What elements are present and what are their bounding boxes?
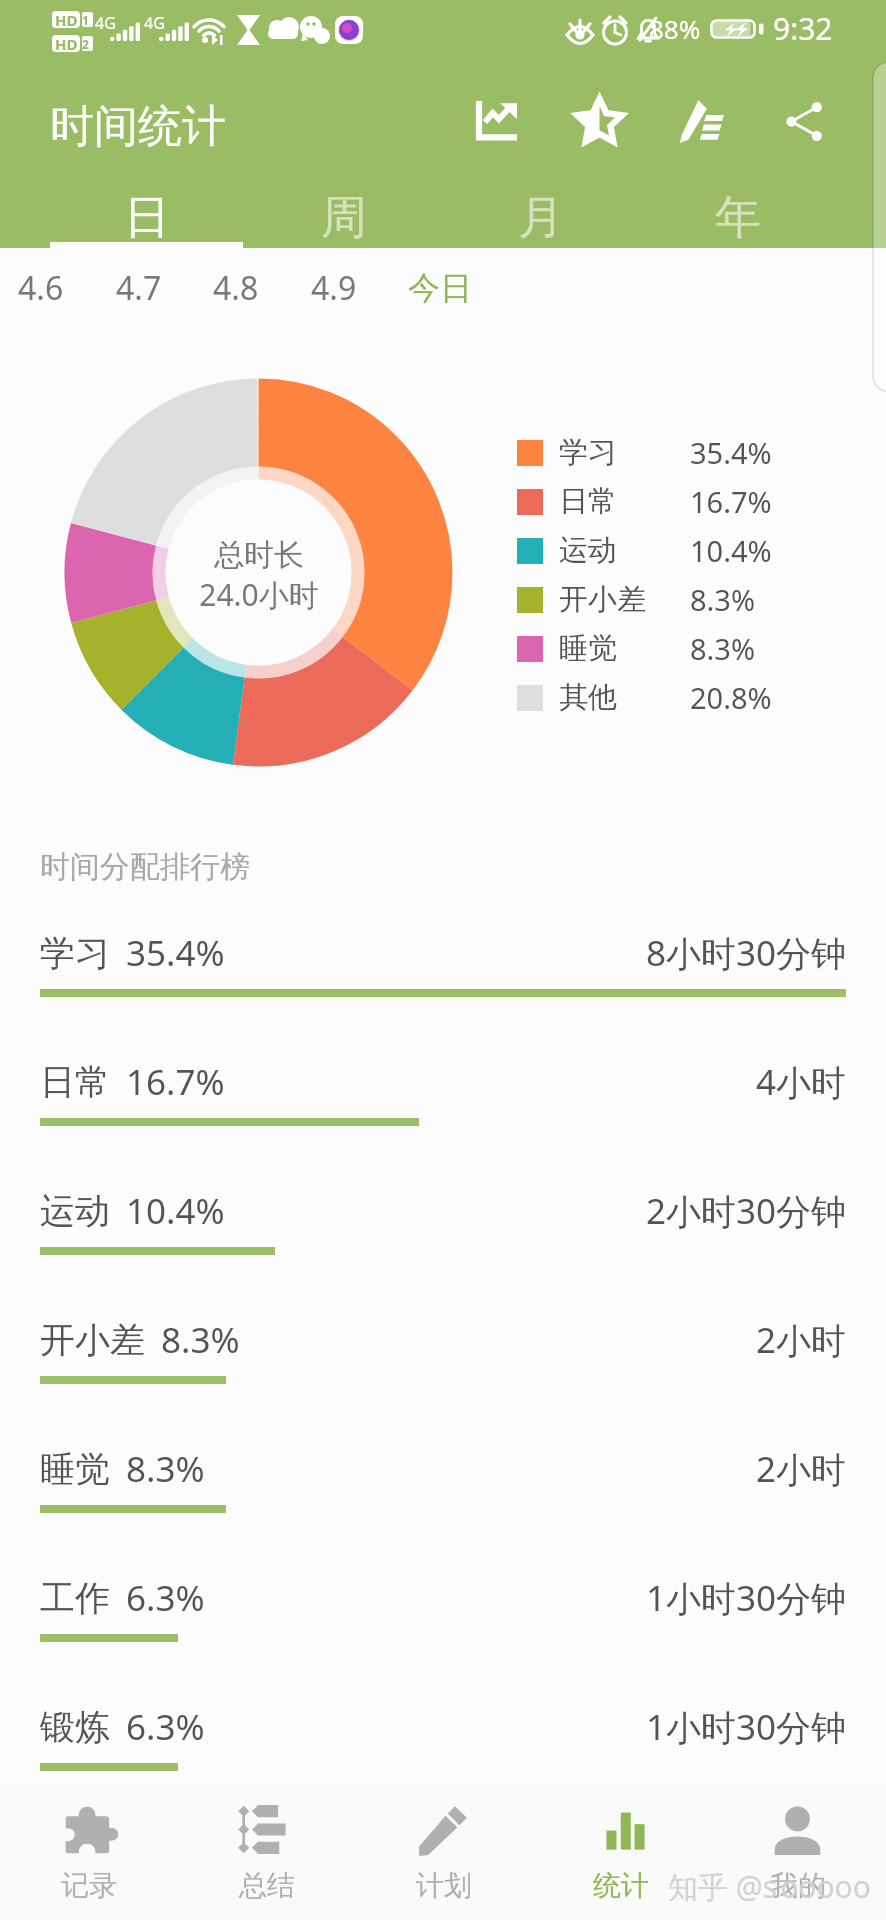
staticText: 8.3% (161, 1316, 240, 1364)
staticText: 统计 (593, 1868, 649, 1903)
staticText: 6.3% (126, 1703, 205, 1751)
staticText: HD (55, 34, 78, 54)
staticText: 4.7 (116, 266, 162, 310)
staticText: 4G (95, 12, 116, 34)
staticText: 其他 (559, 679, 690, 716)
button[interactable]: 4.6 (10, 248, 90, 324)
button[interactable]: 4.7 (108, 248, 188, 324)
staticText: 计划 (416, 1868, 472, 1903)
staticText: 日常 (40, 1060, 110, 1104)
staticText: 4.6 (18, 266, 64, 310)
button[interactable]: 周 (245, 160, 442, 248)
staticText: 睡觉 (559, 630, 690, 667)
button[interactable]: 开小差 (0, 1305, 886, 1434)
staticText: 日常 (559, 483, 690, 520)
button[interactable]: 今日 (400, 248, 480, 324)
button[interactable]: 日常 (0, 1047, 886, 1176)
staticText: 4.9 (311, 266, 357, 310)
staticText: HD (55, 10, 78, 30)
staticText: 1小时30分钟 (646, 1703, 847, 1751)
staticText: 4G (144, 12, 165, 34)
staticText: 我的 (770, 1868, 826, 1903)
button[interactable]: 计划 (355, 1779, 532, 1920)
button[interactable]: 年 (639, 160, 836, 248)
button[interactable]: 睡觉 (0, 1434, 886, 1563)
staticText: 年 (715, 189, 761, 247)
staticText: 6.3% (126, 1574, 205, 1622)
staticText: 4.8 (213, 266, 259, 310)
staticText: 8小时30分钟 (646, 929, 847, 977)
staticText: 1 (82, 12, 89, 28)
button[interactable]: Chart (456, 80, 536, 160)
staticText: 2小时 (756, 1316, 847, 1364)
staticText: 4小时 (756, 1058, 847, 1106)
staticText: 时间统计 (50, 99, 226, 154)
staticText: 知乎 @s ooooo (668, 1866, 871, 1907)
staticText: 16.7% (690, 482, 772, 521)
staticText: 锻炼 (40, 1705, 110, 1749)
staticText: 9:32 (773, 8, 833, 49)
staticText: 8.3% (690, 629, 756, 668)
button[interactable]: 4.9 (303, 248, 383, 324)
button[interactable]: 记录 (0, 1779, 178, 1920)
staticText: 2 (82, 36, 89, 52)
button[interactable]: 锻炼 (0, 1692, 886, 1821)
staticText: 运动 (40, 1189, 110, 1233)
staticText: 1小时30分钟 (646, 1574, 847, 1622)
button[interactable]: 运动 (0, 1176, 886, 1305)
staticText: 睡觉 (40, 1447, 110, 1491)
button[interactable]: 工作 (0, 1563, 886, 1692)
button[interactable]: 学习 (0, 918, 886, 1047)
staticText: 记录 (61, 1868, 117, 1903)
button[interactable]: Edit (661, 80, 741, 160)
staticText: 时间分配排行榜 (40, 848, 250, 886)
staticText: 今日 (408, 268, 472, 308)
button[interactable]: 日 (48, 160, 245, 248)
button[interactable]: 我的 (709, 1779, 886, 1920)
staticText: 周 (321, 189, 367, 247)
button[interactable]: 月 (442, 160, 639, 248)
button[interactable]: Favorite (559, 80, 639, 160)
staticText: 10.4% (690, 531, 772, 570)
staticText: 2小时 (756, 1445, 847, 1493)
staticText: 学习 (40, 931, 110, 975)
staticText: 8.3% (126, 1445, 205, 1493)
button[interactable]: 4.8 (205, 248, 285, 324)
staticText: 10.4% (126, 1187, 225, 1235)
button[interactable]: Share (764, 81, 844, 161)
staticText: 35.4% (690, 433, 772, 472)
button[interactable]: 总结 (178, 1779, 355, 1920)
staticText: 总结 (239, 1868, 295, 1903)
staticText: 运动 (559, 532, 690, 569)
staticText: 日 (124, 189, 170, 247)
staticText: 35.4% (126, 929, 225, 977)
staticText: 24.0小时 (199, 574, 319, 615)
staticText: 总时长 (214, 536, 304, 574)
staticText: 8.3% (690, 580, 756, 619)
staticText: 2小时30分钟 (646, 1187, 847, 1235)
staticText: 工作 (40, 1576, 110, 1620)
staticText: 学习 (559, 434, 690, 471)
staticText: 88% (649, 11, 701, 46)
button[interactable]: 统计 (532, 1779, 709, 1920)
staticText: 16.7% (126, 1058, 225, 1106)
staticText: 开小差 (559, 581, 690, 618)
staticText: 开小差 (40, 1318, 145, 1362)
staticText: 月 (518, 189, 564, 247)
staticText: 20.8% (690, 678, 772, 717)
